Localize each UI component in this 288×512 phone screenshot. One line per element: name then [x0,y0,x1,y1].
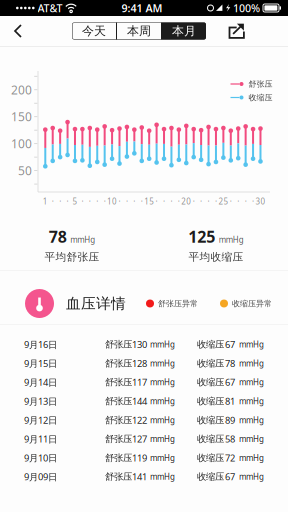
button[interactable]: 9月13日 [0,392,288,411]
staticText: 100 [11,136,32,152]
button[interactable]: 9月15日 [0,354,288,373]
staticText: 200 [11,82,32,98]
staticText: 舒张压 [105,433,132,445]
staticText: 9月12日 [24,414,57,426]
staticText: · [141,196,143,207]
staticText: 150 [11,109,32,125]
staticText: 128 [132,357,147,370]
staticText: 10 [107,196,117,207]
staticText: · [178,196,180,207]
staticText: 本月 [172,24,196,38]
staticText: 9月11日 [24,433,57,445]
staticText: 9:41 AM [122,1,163,15]
staticText: 144 [132,395,147,407]
button[interactable]: 本周 [117,22,161,39]
staticText: 舒张压 [105,358,132,369]
staticText: mmHg [239,377,264,387]
staticText: 收缩压 [197,358,224,369]
staticText: 67 [225,376,235,388]
staticText: 收缩压 [197,452,224,464]
staticText: 舒张压 [105,339,132,350]
staticText: mmHg [239,434,264,444]
staticText: 9月09日 [24,471,57,483]
staticText: · [237,196,239,207]
staticText: 收缩压 [197,339,224,350]
staticText: 收缩压 [197,433,224,445]
staticText: mmHg [239,415,264,425]
staticText: 9月14日 [24,376,57,388]
staticText: AT&T [38,1,63,15]
staticText: 72 [225,452,235,464]
staticText: 20 [181,196,191,207]
staticText: · [96,196,98,207]
staticText: 9月10日 [24,452,57,464]
staticText: 100% [233,1,260,15]
staticText: · [104,196,106,207]
staticText: 收缩压 [197,395,224,407]
staticText: 收缩压 [197,414,224,426]
staticText: 127 [132,433,147,445]
staticText: 67 [225,471,235,483]
staticText: 78 [49,226,67,247]
staticText: mmHg [150,434,175,444]
staticText: mmHg [150,396,175,406]
staticText: 舒张压 [105,414,132,426]
staticText: · [133,196,135,207]
staticText: 舒张压 [248,79,272,89]
staticText: 58 [225,433,235,445]
staticText: 9月13日 [24,395,57,407]
button[interactable]: 本月 [162,22,206,39]
staticText: 1 [43,196,48,207]
button[interactable]: Share [224,16,250,46]
staticText: 舒张压 [105,452,132,464]
staticText: 67 [225,338,235,351]
staticText: 9月16日 [24,338,57,351]
button[interactable]: Back [5,16,31,46]
staticText: mmHg [150,358,175,369]
button[interactable]: 9月14日 [0,373,288,392]
staticText: 今天 [82,24,106,38]
staticText: · [252,196,254,207]
button[interactable]: 9月16日 [0,335,288,354]
button[interactable]: 9月12日 [0,411,288,429]
staticText: 平均舒张压 [44,250,99,263]
staticText: mmHg [239,471,264,482]
staticText: 收缩压异常 [232,299,272,308]
button[interactable]: 9月09日 [0,467,288,486]
staticText: mmHg [150,377,175,387]
staticText: 15 [144,196,154,207]
staticText: mmHg [219,234,244,245]
staticText: · [230,196,232,207]
staticText: 9月15日 [24,357,57,370]
staticText: · [89,196,91,207]
staticText: mmHg [150,339,175,350]
button[interactable]: 9月11日 [0,429,288,448]
staticText: 130 [132,338,147,351]
staticText: 50 [18,163,32,178]
staticText: · [215,196,217,207]
staticText: 81 [225,395,235,407]
staticText: 89 [225,414,235,426]
staticText: · [200,196,202,207]
button[interactable]: 今天 [72,22,116,39]
staticText: 30 [255,196,265,207]
staticText: 125 [188,226,215,247]
staticText: 收缩压 [197,376,224,388]
staticText: · [59,196,61,207]
button[interactable]: 9月10日 [0,448,288,467]
staticText: · [207,196,209,207]
staticText: mmHg [150,471,175,482]
staticText: mmHg [70,234,95,245]
staticText: 收缩压 [197,471,224,482]
staticText: 收缩压 [248,93,272,102]
staticText: · [163,196,165,207]
staticText: 舒张压异常 [158,299,198,308]
staticText: 5 [72,196,77,207]
staticText: 122 [132,414,147,426]
staticText: 舒张压 [105,395,132,407]
staticText: mmHg [239,339,264,350]
staticText: mmHg [150,415,175,425]
staticText: 血压详情 [66,294,126,312]
staticText: 119 [132,452,147,464]
staticText: · [126,196,128,207]
